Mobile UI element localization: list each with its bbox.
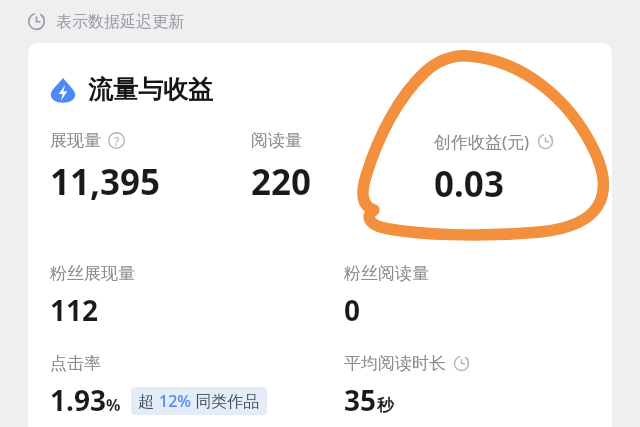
staticText: 0 bbox=[344, 291, 361, 329]
other: Delayed data bbox=[537, 133, 554, 150]
button[interactable]: 点击率 bbox=[50, 353, 267, 419]
staticText: 0.03 bbox=[434, 160, 504, 208]
staticText: 流量与收益 bbox=[88, 74, 213, 105]
staticText: 1.93 bbox=[50, 381, 106, 419]
staticText: 阅读量 bbox=[251, 130, 302, 151]
staticText: 表示数据延迟更新 bbox=[56, 12, 184, 32]
other: Help bbox=[108, 132, 125, 149]
staticText: 展现量 bbox=[50, 130, 101, 151]
button[interactable]: 创作收益(元) bbox=[434, 130, 554, 208]
staticText: 12% bbox=[159, 390, 191, 412]
button[interactable]: 粉丝阅读量 bbox=[344, 263, 429, 329]
staticText: 粉丝阅读量 bbox=[344, 263, 429, 284]
staticText: ? bbox=[114, 133, 120, 149]
staticText: 平均阅读时长 bbox=[344, 353, 446, 374]
staticText: 35 bbox=[344, 381, 377, 419]
staticText: 超 bbox=[138, 390, 159, 412]
staticText: 粉丝展现量 bbox=[50, 263, 135, 284]
other: Delayed data bbox=[27, 12, 46, 31]
staticText: 秒 bbox=[377, 395, 394, 416]
button[interactable]: 阅读量 bbox=[251, 130, 312, 206]
staticText: 创作收益(元) bbox=[434, 130, 530, 153]
other: Delayed data bbox=[453, 355, 470, 372]
button[interactable]: 超 bbox=[131, 387, 267, 415]
staticText: 点击率 bbox=[50, 353, 101, 374]
staticText: 112 bbox=[50, 291, 99, 329]
button[interactable]: 展现量 bbox=[50, 130, 161, 206]
staticText: % bbox=[106, 394, 121, 416]
button[interactable]: 平均阅读时长 bbox=[344, 353, 470, 419]
button[interactable]: Traffic and revenue bbox=[50, 74, 213, 105]
staticText: 同类作品 bbox=[191, 390, 260, 412]
button[interactable]: 粉丝展现量 bbox=[50, 263, 135, 329]
other: Traffic and revenue bbox=[50, 77, 76, 103]
staticText: 220 bbox=[251, 158, 312, 206]
staticText: 11,395 bbox=[50, 158, 161, 206]
